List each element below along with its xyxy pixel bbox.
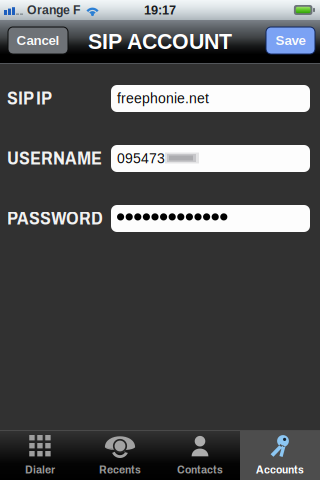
staticText: Cancel — [16, 33, 59, 48]
button[interactable]: Contacts — [160, 431, 240, 480]
staticText: PASSWORD — [7, 209, 103, 228]
button[interactable]: Recents — [80, 431, 160, 480]
staticText: 095473 — [117, 151, 165, 166]
button[interactable]: Dialer — [0, 431, 80, 480]
staticText: Dialer — [25, 463, 55, 476]
button[interactable]: Accounts — [240, 431, 320, 480]
button[interactable] — [111, 205, 310, 232]
staticText: Save — [275, 33, 305, 48]
staticText: Contacts — [177, 463, 223, 476]
staticText: Accounts — [256, 463, 304, 476]
staticText: Recents — [99, 463, 141, 476]
staticText: SIP IP — [7, 89, 52, 108]
staticText: freephonie.net — [117, 91, 209, 106]
button[interactable]: 095473 — [111, 145, 310, 172]
staticText: Orange F — [27, 3, 80, 17]
staticText: 19:17 — [144, 3, 176, 17]
button[interactable]: Cancel — [8, 27, 68, 54]
staticText: SIP ACCOUNT — [88, 30, 232, 53]
button[interactable]: Save — [266, 27, 315, 54]
button[interactable]: freephonie.net — [111, 85, 310, 112]
staticText: USERNAME — [7, 149, 102, 168]
